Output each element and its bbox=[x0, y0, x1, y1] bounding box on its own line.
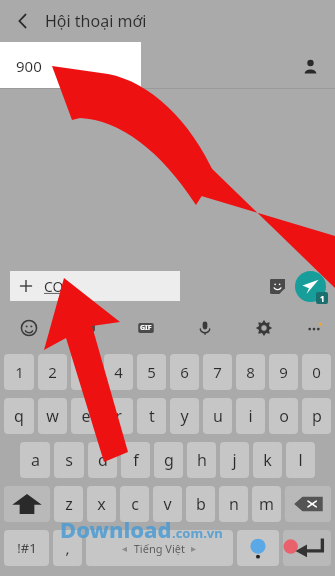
staticText: 9 bbox=[279, 362, 288, 382]
button[interactable]: z bbox=[54, 486, 83, 522]
button[interactable]: Add contact bbox=[293, 49, 327, 83]
staticText: 2 bbox=[48, 362, 57, 382]
button[interactable]: t bbox=[137, 398, 166, 434]
button[interactable]: Theme colors bbox=[237, 530, 279, 566]
staticText: CO bbox=[44, 277, 64, 296]
button[interactable]: b bbox=[186, 486, 215, 522]
staticText: f bbox=[133, 449, 139, 471]
button[interactable]: u bbox=[203, 398, 232, 434]
button[interactable]: y bbox=[170, 398, 199, 434]
staticText: i bbox=[248, 405, 253, 427]
staticText: , bbox=[65, 538, 70, 558]
button[interactable]: Settings bbox=[234, 308, 293, 348]
button[interactable]: Voice input bbox=[175, 308, 234, 348]
staticText: 0 bbox=[312, 362, 321, 382]
button[interactable]: !#1 bbox=[4, 530, 49, 566]
button[interactable]: Sticker bbox=[58, 308, 116, 348]
button[interactable]: 4 bbox=[104, 354, 133, 390]
button[interactable]: k bbox=[253, 442, 282, 478]
button[interactable]: h bbox=[187, 442, 216, 478]
button[interactable]: m bbox=[252, 486, 281, 522]
button[interactable]: CO bbox=[10, 271, 180, 301]
button[interactable]: w bbox=[38, 398, 67, 434]
button[interactable]: 900 bbox=[0, 42, 141, 89]
staticText: 7 bbox=[213, 362, 222, 382]
staticText: y bbox=[180, 405, 189, 427]
button[interactable]: Enter bbox=[283, 530, 331, 566]
staticText: b bbox=[196, 493, 206, 515]
staticText: 6 bbox=[180, 362, 189, 382]
staticText: s bbox=[65, 449, 73, 471]
button[interactable]: r bbox=[104, 398, 133, 434]
staticText: x bbox=[97, 493, 106, 515]
button[interactable]: Send bbox=[292, 268, 328, 304]
button[interactable]: s bbox=[54, 442, 84, 478]
button[interactable]: g bbox=[154, 442, 183, 478]
button[interactable]: , bbox=[53, 530, 82, 566]
button[interactable]: Back bbox=[6, 4, 40, 38]
button[interactable]: 9 bbox=[269, 354, 298, 390]
button[interactable]: q bbox=[4, 398, 34, 434]
button[interactable]: 6 bbox=[170, 354, 199, 390]
staticText: v bbox=[163, 493, 172, 515]
staticText: j bbox=[232, 449, 237, 471]
staticText: e bbox=[81, 405, 91, 427]
staticText: u bbox=[213, 405, 223, 427]
button[interactable]: p bbox=[302, 398, 331, 434]
staticText: 8 bbox=[246, 362, 255, 382]
button[interactable]: 8 bbox=[236, 354, 265, 390]
button[interactable]: 3 bbox=[71, 354, 100, 390]
button[interactable]: j bbox=[220, 442, 249, 478]
button[interactable]: x bbox=[87, 486, 116, 522]
button[interactable]: ◂ bbox=[86, 530, 233, 566]
staticText: Download bbox=[60, 514, 172, 544]
staticText: 4 bbox=[114, 362, 123, 382]
button[interactable]: Sticker bbox=[262, 271, 292, 301]
button[interactable]: Backspace bbox=[285, 486, 331, 522]
button[interactable]: l bbox=[286, 442, 315, 478]
button[interactable]: f bbox=[121, 442, 150, 478]
button[interactable]: Emoji bbox=[0, 308, 58, 348]
staticText: p bbox=[312, 405, 322, 427]
staticText: q bbox=[14, 405, 24, 427]
button[interactable]: c bbox=[120, 486, 149, 522]
staticText: 1 bbox=[15, 362, 24, 382]
staticText: 900 bbox=[16, 56, 42, 76]
staticText: z bbox=[65, 493, 73, 515]
button[interactable]: n bbox=[219, 486, 248, 522]
staticText: GIF bbox=[140, 323, 152, 333]
staticText: m bbox=[259, 493, 274, 515]
button[interactable]: 0 bbox=[302, 354, 331, 390]
button[interactable]: o bbox=[269, 398, 298, 434]
staticText: c bbox=[131, 493, 139, 515]
button[interactable]: 5 bbox=[137, 354, 166, 390]
staticText: r bbox=[115, 405, 122, 427]
staticText: ◂ bbox=[122, 543, 128, 555]
staticText: a bbox=[31, 449, 40, 471]
button[interactable]: d bbox=[88, 442, 117, 478]
staticText: d bbox=[98, 449, 108, 471]
staticText: Hội thoại mới bbox=[45, 10, 147, 32]
staticText: !#1 bbox=[17, 539, 37, 557]
staticText: ▸ bbox=[191, 543, 197, 555]
staticText: Tiếng Việt bbox=[128, 541, 191, 556]
staticText: t bbox=[149, 405, 155, 427]
button[interactable]: i bbox=[236, 398, 265, 434]
button[interactable]: More options bbox=[293, 308, 335, 348]
staticText: o bbox=[279, 405, 289, 427]
button[interactable]: a bbox=[20, 442, 50, 478]
button[interactable]: 2 bbox=[38, 354, 67, 390]
staticText: n bbox=[229, 493, 239, 515]
button[interactable]: 7 bbox=[203, 354, 232, 390]
staticText: h bbox=[197, 449, 207, 471]
button[interactable]: GIF bbox=[116, 308, 175, 348]
button[interactable]: 1 bbox=[4, 354, 34, 390]
staticText: k bbox=[263, 449, 272, 471]
button[interactable]: e bbox=[71, 398, 100, 434]
button[interactable]: Shift bbox=[4, 486, 50, 522]
staticText: 5 bbox=[147, 362, 156, 382]
button[interactable]: v bbox=[153, 486, 182, 522]
staticText: 1 bbox=[320, 293, 325, 304]
staticText: .com.vn bbox=[172, 524, 223, 542]
